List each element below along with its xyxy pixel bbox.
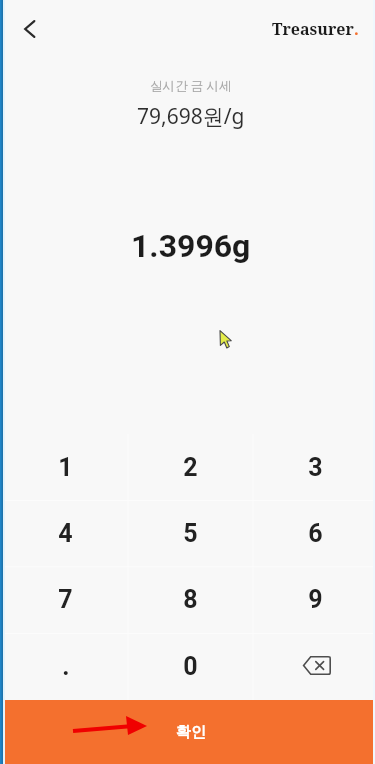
staticText: . xyxy=(62,652,70,681)
staticText: 4 xyxy=(58,519,73,548)
button[interactable]: 4 xyxy=(3,500,128,566)
button[interactable]: 1 xyxy=(3,434,128,500)
staticText: 확인 xyxy=(176,723,206,742)
button[interactable]: 8 xyxy=(128,566,253,633)
staticText: 9 xyxy=(308,585,323,614)
button[interactable]: 0 xyxy=(128,633,253,700)
staticText: . xyxy=(354,18,359,40)
button[interactable]: Backspace xyxy=(299,653,333,677)
staticText: 5 xyxy=(183,519,198,548)
button[interactable]: 9 xyxy=(253,566,375,633)
button[interactable]: 3 xyxy=(253,434,375,500)
button[interactable]: 7 xyxy=(3,566,128,633)
staticText: 실시간 금 시세 xyxy=(150,77,232,94)
button[interactable]: 2 xyxy=(128,434,253,500)
staticText: 1 xyxy=(58,453,73,482)
staticText: 8 xyxy=(183,585,198,614)
staticText: 6 xyxy=(308,519,323,548)
button[interactable]: Back xyxy=(7,6,52,51)
button[interactable]: Backspace xyxy=(253,633,375,700)
button[interactable]: 확인 xyxy=(3,700,375,764)
staticText: 0 xyxy=(183,652,198,681)
staticText: 2 xyxy=(183,453,198,482)
button[interactable]: 6 xyxy=(253,500,375,566)
staticText: 1.3996g xyxy=(131,227,251,265)
button[interactable]: 5 xyxy=(128,500,253,566)
staticText: 79,698원/g xyxy=(137,102,245,131)
button[interactable]: . xyxy=(3,633,128,700)
staticText: 7 xyxy=(58,585,73,614)
staticText: Treasurer xyxy=(272,18,354,40)
staticText: 3 xyxy=(308,453,323,482)
